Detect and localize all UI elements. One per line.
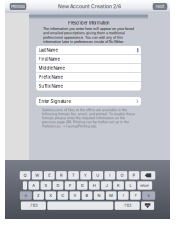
- button[interactable]: L: [125, 181, 136, 190]
- staticText: Middle Name: [39, 66, 65, 71]
- button[interactable]: space: [47, 201, 113, 210]
- staticText: U: [96, 173, 99, 178]
- button[interactable]: M: [106, 191, 116, 200]
- button[interactable]: Shift: [142, 191, 155, 200]
- staticText: S: [44, 183, 47, 188]
- button[interactable]: First Name: [36, 55, 141, 63]
- button[interactable]: Tab: [23, 181, 27, 190]
- button[interactable]: !: [118, 191, 129, 200]
- button[interactable]: N: [94, 191, 104, 200]
- button[interactable]: Enter Signature: [36, 97, 141, 106]
- staticText: First Name: [39, 57, 60, 62]
- staticText: L: [130, 183, 132, 188]
- button[interactable]: Middle Name: [36, 64, 141, 72]
- button[interactable]: ?: [130, 191, 141, 200]
- staticText: Previous: [11, 4, 25, 9]
- staticText: F: [69, 183, 71, 188]
- staticText: .?123: [29, 204, 37, 208]
- button[interactable]: Suffix Name: [36, 82, 141, 90]
- staticText: A: [32, 183, 35, 188]
- staticText: ?: [134, 193, 136, 198]
- button[interactable]: D: [53, 181, 63, 190]
- staticText: Last Name: [39, 48, 58, 53]
- button[interactable]: G: [77, 181, 87, 190]
- staticText: X: [49, 193, 52, 198]
- button[interactable]: Z: [33, 191, 44, 200]
- staticText: Prescriber Information: [68, 20, 109, 25]
- staticText: Z: [37, 193, 40, 198]
- button[interactable]: Last Name: [36, 46, 141, 54]
- button[interactable]: E: [44, 171, 55, 180]
- button[interactable]: Next: [153, 3, 167, 10]
- staticText: R: [60, 173, 63, 178]
- staticText: Next: [156, 4, 164, 9]
- button[interactable]: J: [101, 181, 112, 190]
- button[interactable]: B: [82, 191, 92, 200]
- staticText: Submissions of files to the office are a…: [42, 108, 135, 128]
- staticText: J: [105, 183, 107, 188]
- button[interactable]: U: [92, 171, 103, 180]
- button[interactable]: R: [56, 171, 67, 180]
- staticText: H: [93, 183, 96, 188]
- staticText: W: [35, 173, 39, 178]
- staticText: .?123: [123, 204, 131, 208]
- button[interactable]: T: [68, 171, 79, 180]
- button[interactable]: S: [40, 181, 51, 190]
- staticText: I: [109, 173, 110, 178]
- button[interactable]: X: [45, 191, 56, 200]
- button[interactable]: I: [104, 171, 115, 180]
- staticText: B: [85, 193, 88, 198]
- button[interactable]: Delete: [141, 171, 155, 180]
- button[interactable]: Y: [80, 171, 91, 180]
- button[interactable]: .?123: [21, 201, 46, 210]
- button[interactable]: Previous: [10, 3, 26, 10]
- staticText: P: [132, 173, 135, 178]
- staticText: C: [61, 193, 64, 198]
- button[interactable]: O: [116, 171, 127, 180]
- button[interactable]: H: [89, 181, 100, 190]
- button[interactable]: C: [57, 191, 68, 200]
- staticText: T: [72, 173, 75, 178]
- button[interactable]: A: [28, 181, 39, 190]
- staticText: Y: [84, 173, 87, 178]
- staticText: !: [123, 193, 124, 198]
- staticText: M: [109, 193, 113, 198]
- staticText: Q: [24, 173, 27, 178]
- staticText: D: [56, 183, 59, 188]
- staticText: Enter Signature: [39, 99, 71, 104]
- button[interactable]: Prefix Name: [36, 73, 141, 81]
- staticText: Suffix Name: [39, 84, 63, 89]
- button[interactable]: F: [65, 181, 75, 190]
- staticText: V: [73, 193, 76, 198]
- staticText: N: [98, 193, 101, 198]
- staticText: The information you enter here will appe…: [43, 26, 134, 44]
- staticText: E: [48, 173, 50, 178]
- button[interactable]: K: [113, 181, 124, 190]
- staticText: Prefix Name: [39, 75, 63, 80]
- button[interactable]: P: [129, 171, 139, 180]
- button[interactable]: W: [32, 171, 42, 180]
- staticText: G: [81, 183, 84, 188]
- button[interactable]: V: [69, 191, 80, 200]
- button[interactable]: return: [137, 181, 152, 190]
- button[interactable]: .?123: [115, 201, 140, 210]
- button[interactable]: Q: [20, 171, 30, 180]
- staticText: O: [120, 173, 123, 178]
- staticText: K: [117, 183, 120, 188]
- button[interactable]: Shift: [20, 191, 32, 200]
- button[interactable]: Hide Keyboard: [141, 201, 154, 210]
- staticText: return: [140, 183, 149, 187]
- staticText: New Account Creation 2/6: [58, 3, 121, 9]
